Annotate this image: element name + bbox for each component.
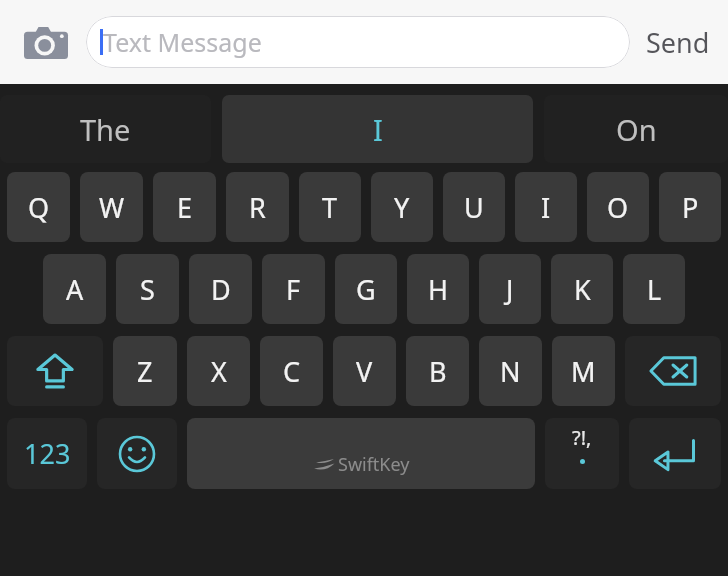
staticText: S [140, 271, 155, 308]
button[interactable]: K [551, 254, 613, 324]
staticText: F [286, 271, 301, 308]
button[interactable]: V [333, 336, 396, 406]
button[interactable]: Y [371, 172, 433, 242]
button[interactable]: S [116, 254, 179, 324]
staticText: 123 [24, 435, 71, 472]
button[interactable]: The [0, 95, 211, 163]
button[interactable]: T [299, 172, 361, 242]
button[interactable]: A [43, 254, 106, 324]
button[interactable]: I [515, 172, 577, 242]
staticText: C [283, 353, 301, 390]
staticText: E [177, 189, 193, 226]
button[interactable]: W [80, 172, 143, 242]
button[interactable]: J [479, 254, 541, 324]
button[interactable]: U [443, 172, 505, 242]
staticText: I [541, 189, 551, 226]
staticText: Send [646, 24, 710, 61]
button[interactable]: H [407, 254, 469, 324]
staticText: Z [137, 353, 153, 390]
staticText: P [682, 189, 699, 226]
button[interactable]: Q [7, 172, 70, 242]
button[interactable]: F [262, 254, 325, 324]
button[interactable]: Enter [629, 418, 721, 489]
staticText: V [356, 353, 373, 390]
button[interactable]: Camera [14, 10, 78, 74]
button[interactable]: E [153, 172, 216, 242]
button[interactable]: N [479, 336, 542, 406]
button[interactable]: P [659, 172, 721, 242]
staticText: L [647, 271, 662, 308]
staticText: W [99, 189, 125, 226]
staticText: U [464, 189, 484, 226]
staticText: Q [28, 189, 50, 226]
staticText: The [80, 110, 131, 149]
button[interactable]: L [623, 254, 685, 324]
staticText: X [211, 353, 227, 390]
button[interactable]: X [187, 336, 250, 406]
staticText: R [249, 189, 266, 226]
button[interactable]: 123 [7, 418, 87, 489]
button[interactable]: R [226, 172, 289, 242]
button[interactable]: B [406, 336, 469, 406]
button[interactable]: Backspace [625, 336, 721, 406]
button[interactable]: Text Message [86, 16, 630, 68]
button[interactable]: Space [187, 418, 535, 489]
button[interactable]: Emoji [97, 418, 177, 489]
staticText: I [373, 110, 383, 149]
button[interactable]: Z [113, 336, 177, 406]
button[interactable]: O [587, 172, 649, 242]
staticText: D [211, 271, 231, 308]
button[interactable]: I [222, 95, 533, 163]
button[interactable]: D [189, 254, 252, 324]
button[interactable]: Punctuation [545, 418, 619, 489]
staticText: ?!, [572, 424, 592, 451]
button[interactable]: Shift [7, 336, 103, 406]
button[interactable]: G [335, 254, 397, 324]
staticText: Text Message [103, 25, 262, 59]
staticText: H [428, 271, 449, 308]
staticText: T [322, 189, 338, 226]
staticText: O [607, 189, 629, 226]
button[interactable]: On [544, 95, 728, 163]
button[interactable]: Send [642, 24, 714, 61]
staticText: J [506, 271, 514, 308]
button[interactable]: C [260, 336, 323, 406]
staticText: A [66, 271, 84, 308]
staticText: N [500, 353, 521, 390]
staticText: K [574, 271, 591, 308]
button[interactable]: M [552, 336, 615, 406]
staticText: M [571, 353, 596, 390]
staticText: SwiftKey [338, 452, 410, 477]
staticText: B [429, 353, 447, 390]
staticText: On [616, 110, 657, 149]
staticText: G [356, 271, 376, 308]
staticText: Y [394, 189, 410, 226]
